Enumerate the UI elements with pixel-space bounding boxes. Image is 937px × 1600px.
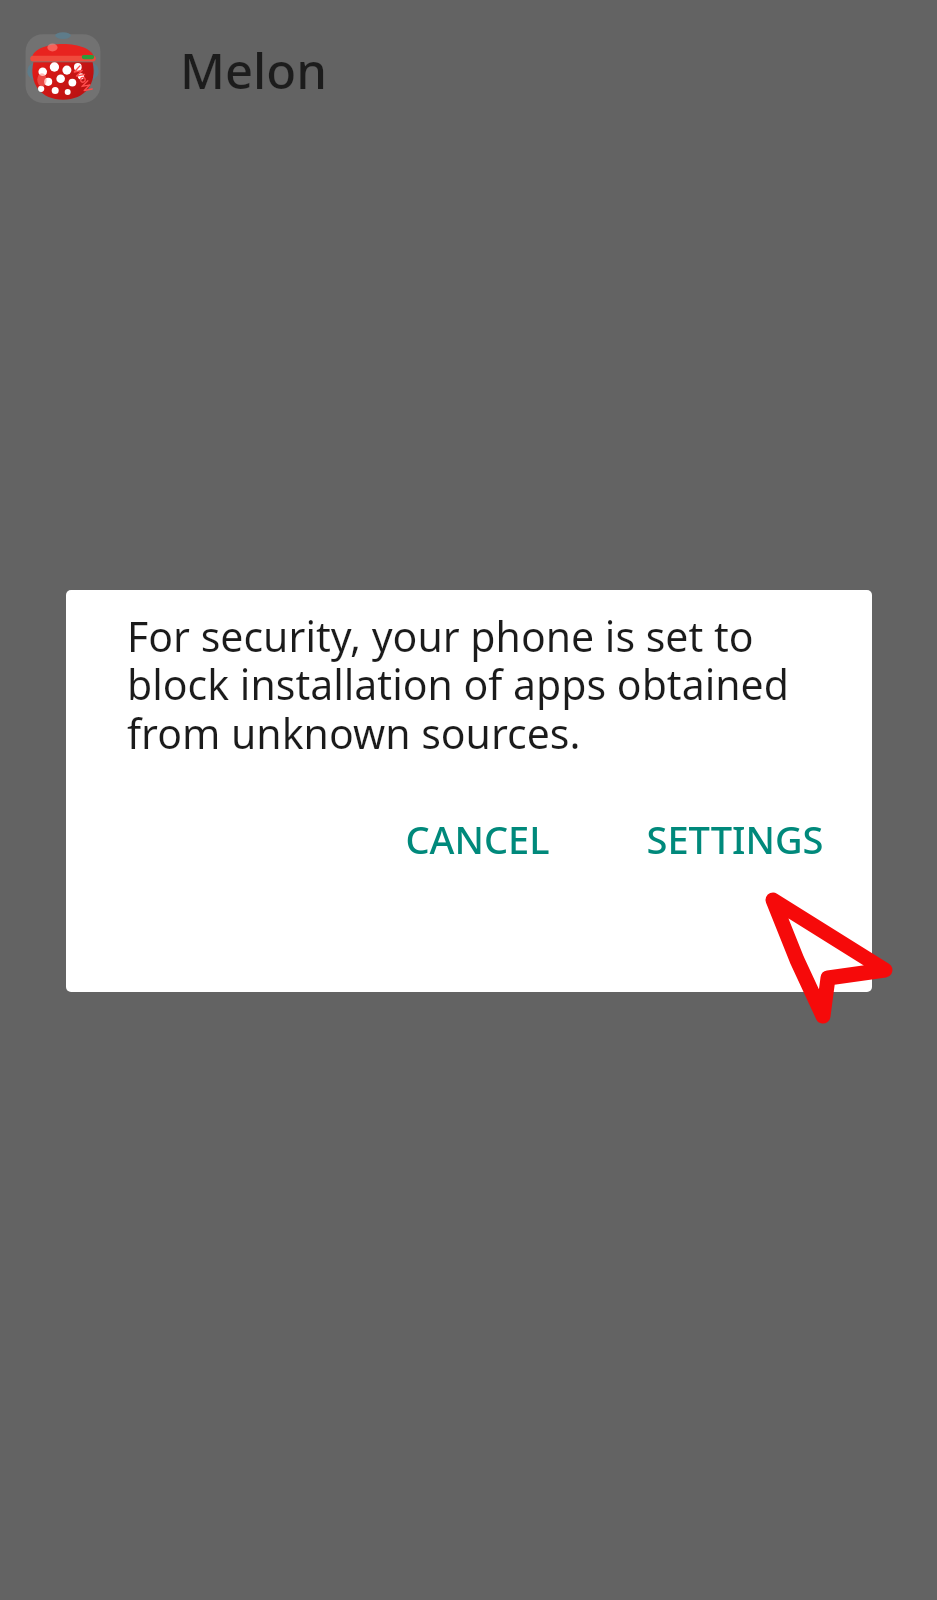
staticText: CANCEL <box>405 813 550 865</box>
staticText: Melon <box>180 37 328 104</box>
other: Pointer <box>0 0 937 1600</box>
staticText: For security, your phone is set to block… <box>127 608 824 761</box>
button[interactable]: SETTINGS <box>624 797 846 881</box>
button[interactable]: CANCEL <box>383 797 572 881</box>
staticText: SETTINGS <box>646 813 824 865</box>
